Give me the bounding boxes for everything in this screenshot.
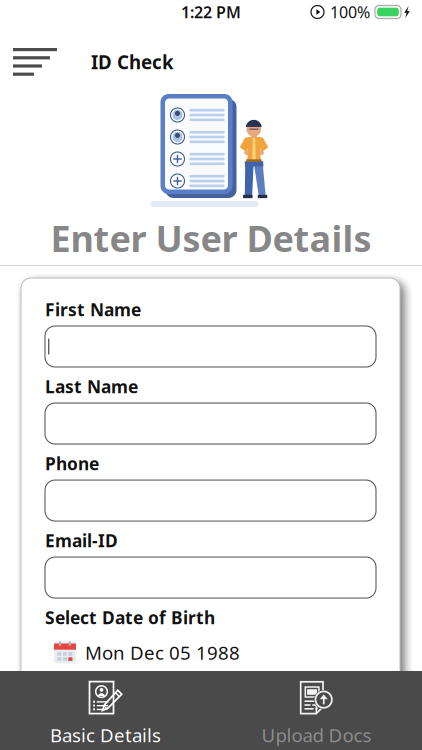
staticText: Enter User Details bbox=[50, 214, 371, 262]
button[interactable]: Last Name bbox=[45, 403, 376, 444]
staticText: Mon Dec 05 1988 bbox=[85, 640, 240, 665]
button[interactable]: Upload Docs bbox=[211, 669, 422, 750]
button[interactable]: Menu bbox=[0, 38, 71, 86]
staticText: Upload Docs bbox=[261, 723, 371, 747]
staticText: Email-ID bbox=[45, 529, 118, 552]
staticText: Select Date of Birth bbox=[45, 606, 215, 629]
staticText: Basic Details bbox=[50, 723, 161, 747]
button[interactable]: Basic Details bbox=[0, 669, 211, 750]
staticText: Phone bbox=[45, 452, 99, 475]
button[interactable]: First Name bbox=[45, 326, 376, 367]
staticText: First Name bbox=[45, 298, 141, 321]
button[interactable]: Email-ID bbox=[45, 557, 376, 598]
button[interactable]: Phone bbox=[45, 480, 376, 521]
button[interactable]: Mon Dec 05 1988 bbox=[45, 640, 376, 665]
staticText: 1:22 PM bbox=[181, 1, 241, 23]
staticText: Last Name bbox=[45, 375, 138, 398]
staticText: ID Check bbox=[91, 50, 174, 74]
staticText: 100% bbox=[330, 1, 370, 23]
